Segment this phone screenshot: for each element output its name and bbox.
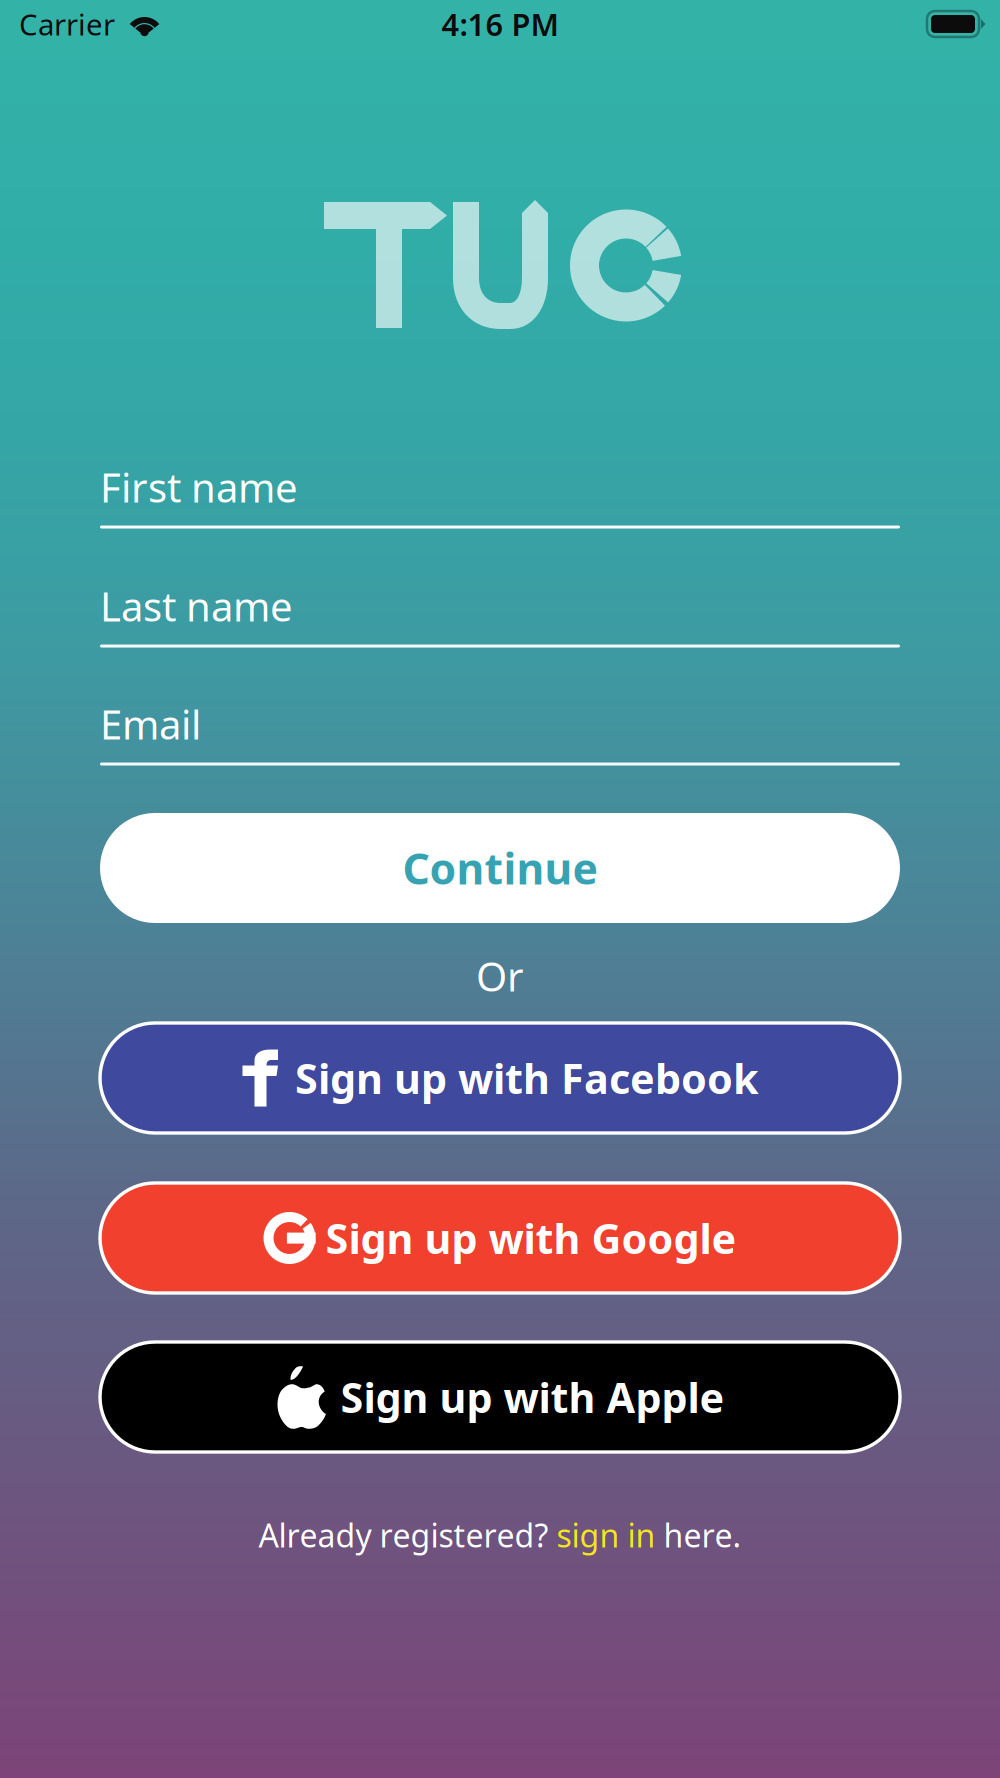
staticText: Or bbox=[476, 949, 524, 1002]
staticText: here. bbox=[655, 1514, 741, 1556]
staticText: Last name bbox=[100, 579, 293, 632]
staticText: Email bbox=[100, 697, 201, 750]
staticText: Already registered? bbox=[258, 1514, 556, 1556]
staticText: Sign up with Apple bbox=[340, 1370, 724, 1424]
button[interactable]: Sign up with Facebook bbox=[100, 1023, 900, 1133]
button[interactable]: sign in bbox=[556, 1514, 655, 1556]
staticText: Carrier bbox=[19, 4, 115, 43]
staticText: First name bbox=[100, 460, 298, 513]
button[interactable]: Continue bbox=[100, 813, 900, 923]
button[interactable]: Sign up with Google bbox=[100, 1183, 900, 1293]
staticText: Continue bbox=[402, 840, 597, 896]
staticText: sign in bbox=[556, 1514, 655, 1556]
staticText: 4:16 PM bbox=[441, 4, 558, 44]
staticText: Sign up with Facebook bbox=[295, 1051, 759, 1105]
button[interactable]: Sign up with Apple bbox=[100, 1342, 900, 1452]
staticText: Sign up with Google bbox=[325, 1211, 736, 1265]
